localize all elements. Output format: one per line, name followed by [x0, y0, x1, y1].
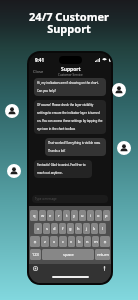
staticText: e	[49, 213, 52, 218]
staticText: z	[44, 239, 46, 244]
staticText: Hi, my indicators aren't showing on the …	[37, 81, 103, 93]
button[interactable]: Hi, my indicators aren't showing on the …	[34, 78, 106, 96]
button[interactable]: j	[83, 223, 90, 234]
button[interactable]: User avatar	[7, 164, 21, 178]
button[interactable]: e	[47, 210, 54, 221]
button[interactable]: r	[55, 210, 62, 221]
staticText: q	[33, 213, 36, 218]
staticText: r	[58, 213, 60, 218]
button[interactable]: Dictate	[103, 266, 106, 271]
staticText: Fantastic! Glad to assist. Feel free to …	[37, 163, 89, 175]
button[interactable]: o	[95, 210, 102, 221]
button[interactable]: x	[50, 236, 58, 247]
button[interactable]: a	[34, 223, 42, 234]
staticText: w	[41, 213, 45, 218]
button[interactable]: Backspace	[100, 236, 110, 247]
staticText: c	[62, 239, 64, 244]
staticText: y	[73, 213, 76, 218]
staticText: p	[105, 213, 108, 218]
staticText: m	[94, 239, 98, 244]
staticText: j	[86, 226, 88, 231]
staticText: v	[70, 239, 73, 244]
staticText: x	[53, 239, 56, 244]
button[interactable]: Fantastic! Glad to assist. Feel free to …	[34, 160, 92, 178]
button[interactable]: w	[39, 210, 46, 221]
staticText: o	[97, 213, 100, 218]
button[interactable]: Switch language	[33, 266, 38, 271]
button[interactable]: return	[95, 249, 110, 260]
button[interactable]: Of course! Please check the layer visibi…	[34, 100, 106, 134]
button[interactable]: l	[99, 223, 106, 234]
staticText: 24/7 Customer Support	[0, 9, 138, 36]
staticText: space	[63, 252, 74, 257]
button[interactable]: c	[59, 236, 67, 247]
staticText: a	[37, 226, 40, 231]
staticText: 123	[32, 252, 39, 257]
button[interactable]: u	[79, 210, 86, 221]
staticText: Customer Service	[58, 73, 83, 77]
button[interactable]: That worked! Everything is visible now. …	[45, 138, 106, 156]
button[interactable]: f	[59, 223, 66, 234]
button[interactable]: User avatar	[117, 141, 131, 155]
button[interactable]: 123	[30, 249, 41, 260]
button[interactable]: b	[76, 236, 83, 247]
staticText: k	[93, 226, 96, 231]
staticText: l	[102, 226, 104, 231]
button[interactable]: v	[68, 236, 75, 247]
button[interactable]: Close	[33, 69, 44, 74]
button[interactable]: q	[30, 210, 38, 221]
staticText: Type a message	[35, 197, 57, 201]
staticText: That worked! Everything is visible now. …	[48, 141, 103, 153]
button[interactable]: s	[43, 223, 50, 234]
staticText: 9:41	[35, 57, 44, 63]
staticText: Support	[61, 66, 81, 73]
button[interactable]: Type a message	[32, 192, 108, 206]
button[interactable]: User avatar	[112, 83, 126, 97]
button[interactable]: User avatar	[5, 104, 19, 118]
button[interactable]: i	[87, 210, 94, 221]
button[interactable]: p	[103, 210, 110, 221]
button[interactable]: g	[67, 223, 74, 234]
button[interactable]: n	[84, 236, 91, 247]
staticText: f	[62, 226, 64, 231]
button[interactable]: t	[63, 210, 70, 221]
button[interactable]: k	[91, 223, 98, 234]
staticText: i	[90, 213, 92, 218]
staticText: s	[46, 226, 48, 231]
button[interactable]: z	[41, 236, 49, 247]
staticText: g	[69, 226, 72, 231]
staticText: Of course! Please check the layer visibi…	[37, 103, 103, 131]
staticText: t	[66, 213, 68, 218]
staticText: b	[78, 239, 81, 244]
staticText: u	[81, 213, 84, 218]
staticText: n	[86, 239, 89, 244]
button[interactable]: d	[51, 223, 58, 234]
button[interactable]: Shift	[30, 236, 40, 247]
staticText: d	[53, 226, 56, 231]
button[interactable]: m	[92, 236, 99, 247]
button[interactable]: y	[71, 210, 78, 221]
staticText: return	[97, 252, 109, 257]
button[interactable]: space	[42, 249, 94, 260]
button[interactable]: h	[75, 223, 82, 234]
staticText: h	[77, 226, 80, 231]
